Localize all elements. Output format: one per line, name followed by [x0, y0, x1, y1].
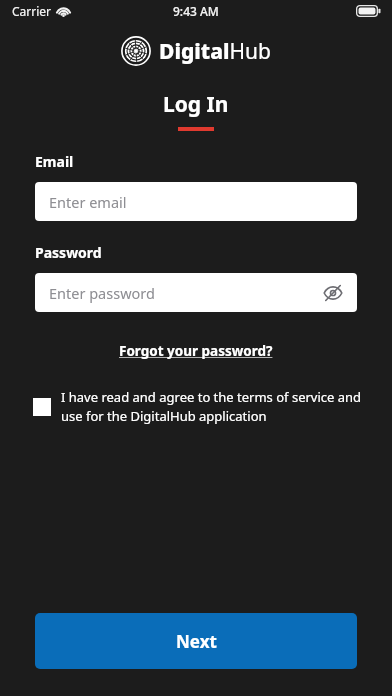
staticText: Enter password	[49, 283, 155, 303]
staticText: Carrier	[12, 3, 52, 19]
button[interactable]: Enter password	[35, 273, 357, 312]
staticText: Next	[176, 630, 217, 653]
staticText: Forgot your password?	[119, 342, 273, 360]
staticText: Email	[35, 152, 74, 171]
staticText: 9:43 AM	[173, 3, 219, 19]
button[interactable]: Next	[35, 613, 357, 669]
button[interactable]: Forgot your password?	[113, 340, 279, 362]
button[interactable]: Enter email	[35, 182, 357, 221]
staticText: Log In	[163, 90, 229, 119]
staticText: Enter email	[49, 192, 127, 212]
button[interactable]: I have read and agree to the terms of se…	[0, 384, 392, 429]
button[interactable]: Show password	[319, 279, 347, 307]
staticText: Password	[35, 243, 102, 262]
staticText: DigitalHub	[159, 37, 271, 66]
staticText: I have read and agree to the terms of se…	[61, 388, 364, 425]
